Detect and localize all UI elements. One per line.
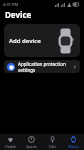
button[interactable]: Watch [63,134,84,150]
staticText: Health [5,144,16,149]
button[interactable]: Add device [4,24,80,57]
button[interactable]: Health [0,134,21,150]
staticText: Add device [9,37,41,45]
staticText: Device [5,9,32,20]
staticText: Watch [68,144,79,149]
staticText: Application protection settings [18,61,73,73]
staticText: Diet [49,144,56,149]
button[interactable]: Diet [42,134,63,150]
button[interactable]: Application protection settings [4,60,80,73]
staticText: Sports [26,144,37,149]
staticText: 4:01 PM [3,2,19,7]
button[interactable]: Sports [21,134,42,150]
